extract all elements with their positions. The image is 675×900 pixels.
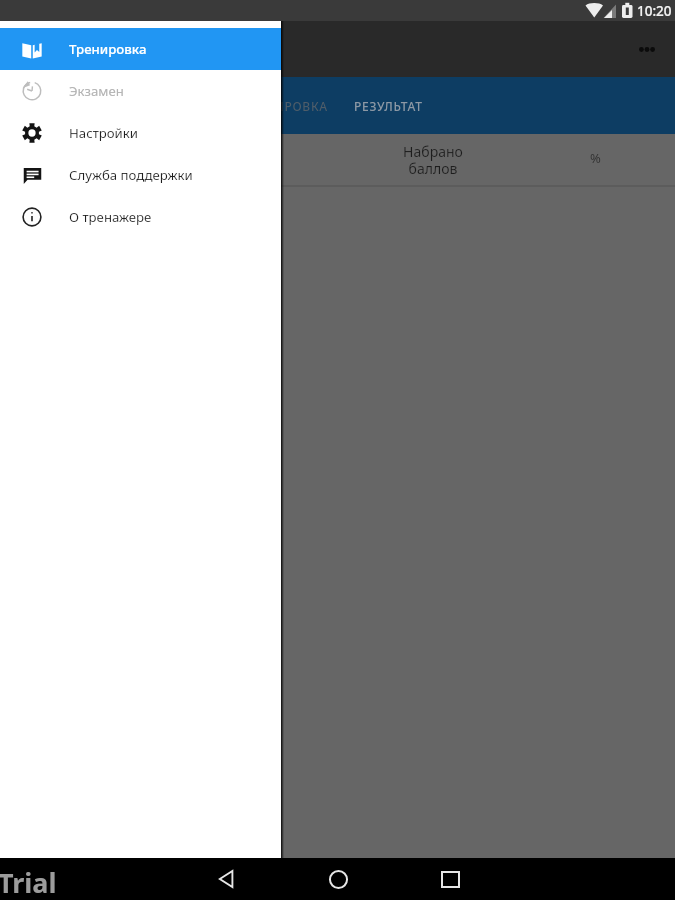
staticText: Экзамен — [69, 82, 124, 100]
staticText: Настройки — [69, 124, 138, 142]
staticText: 10:20 — [637, 2, 672, 20]
staticText: % — [590, 149, 601, 167]
button[interactable]: More options — [626, 28, 668, 70]
staticText: Тренировка — [69, 40, 147, 58]
staticText: Trial — [0, 864, 57, 900]
staticText: О тренажере — [69, 208, 152, 226]
button[interactable]: Настройки — [0, 112, 281, 154]
staticText: Набрано баллов — [391, 142, 475, 178]
button[interactable]: ТРЕНИРОВКА — [230, 77, 340, 134]
button[interactable]: Тренировка — [0, 28, 281, 70]
button[interactable]: О тренажере — [0, 196, 281, 238]
button[interactable]: Home — [310, 858, 366, 900]
button[interactable]: РЕЗУЛЬТАТ — [333, 77, 443, 134]
staticText: ТРЕНИРОВКА — [242, 98, 328, 114]
button[interactable]: Recent apps — [422, 858, 478, 900]
staticText: РЕЗУЛЬТАТ — [354, 98, 423, 114]
button[interactable]: Экзамен — [0, 70, 281, 112]
staticText: Служба поддержки — [69, 166, 193, 184]
button[interactable]: Служба поддержки — [0, 154, 281, 196]
button[interactable]: Back — [199, 858, 255, 900]
